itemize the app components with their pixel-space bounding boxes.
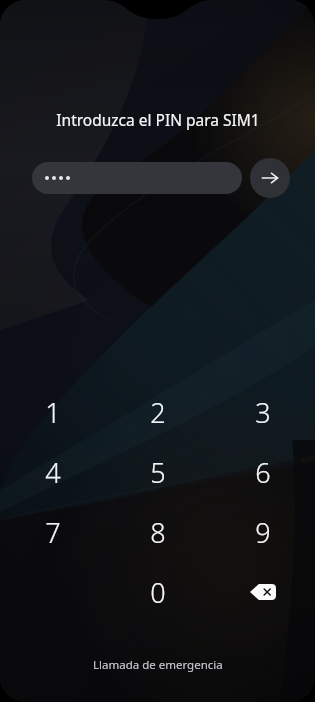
staticText: 2 [150, 394, 166, 431]
staticText: 3 [255, 394, 271, 431]
button[interactable]: Llamada de emergencia [79, 652, 237, 678]
button[interactable]: Enviar PIN [250, 158, 290, 198]
staticText: Llamada de emergencia [93, 657, 223, 673]
staticText: 6 [255, 454, 271, 491]
button[interactable]: 5 [129, 443, 187, 501]
button[interactable] [32, 162, 242, 194]
button[interactable]: Borrar [234, 563, 292, 621]
staticText: Introduzca el PIN para SIM1 [56, 109, 260, 130]
button[interactable]: 1 [24, 383, 82, 441]
staticText: 9 [255, 514, 271, 551]
button[interactable]: 3 [234, 383, 292, 441]
button[interactable]: 6 [234, 443, 292, 501]
staticText: 5 [150, 454, 166, 491]
button[interactable]: 0 [129, 563, 187, 621]
button[interactable]: 8 [129, 503, 187, 561]
staticText: 4 [45, 454, 61, 491]
button[interactable]: 2 [129, 383, 187, 441]
staticText: 8 [150, 514, 166, 551]
button[interactable]: 4 [24, 443, 82, 501]
staticText: 7 [45, 514, 61, 551]
staticText: 0 [150, 574, 166, 611]
button[interactable]: 9 [234, 503, 292, 561]
button[interactable]: 7 [24, 503, 82, 561]
staticText: 1 [45, 394, 61, 431]
